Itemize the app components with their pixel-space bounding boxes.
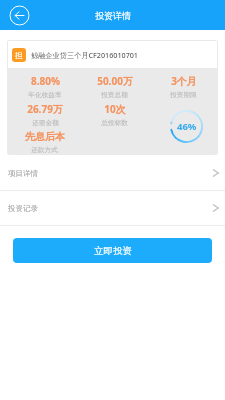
staticText: 3个月 (171, 74, 197, 88)
button[interactable]: 投资记录 (0, 191, 225, 225)
button[interactable]: 项目详情 (0, 156, 225, 190)
staticText: 担 (15, 51, 23, 60)
staticText: 26.79万 (27, 102, 63, 116)
staticText: 8.80% (31, 74, 60, 88)
button[interactable]: 立即投资 (13, 238, 212, 263)
staticText: 鲸融企业贷三个月CF2016010701 (31, 50, 138, 60)
staticText: 投资详情 (95, 10, 131, 21)
staticText: 还需金额 (32, 119, 59, 127)
staticText: 50.00万 (97, 74, 133, 88)
staticText: 还款方式 (31, 146, 58, 154)
staticText: 46% (177, 120, 197, 133)
staticText: 项目详情 (8, 169, 38, 178)
staticText: 投资总额 (101, 91, 128, 99)
button[interactable]: Back (9, 5, 30, 26)
staticText: 投资期限 (170, 91, 197, 99)
staticText: 投资记录 (8, 204, 38, 213)
staticText: 先息后本 (25, 130, 65, 143)
staticText: 10次 (104, 102, 126, 116)
staticText: 总投标数 (101, 119, 128, 127)
staticText: 年化收益率 (28, 91, 62, 99)
staticText: 立即投资 (94, 245, 132, 257)
